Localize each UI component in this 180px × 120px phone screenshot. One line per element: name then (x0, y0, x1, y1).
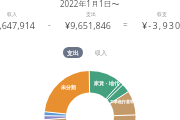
staticText: = (123, 19, 128, 30)
staticText: ¥9,651,846 (65, 19, 112, 31)
staticText: - (48, 19, 51, 30)
button[interactable]: 支出 (63, 47, 83, 58)
button[interactable]: 収入 (91, 47, 111, 58)
staticText: 2022年1月1日〜 (60, 0, 120, 7)
button[interactable]: 2022年1月1日〜 (0, 0, 180, 9)
staticText: 家賃・地代 (94, 80, 119, 86)
staticText: 収入 (95, 49, 107, 57)
staticText: 収支 (157, 11, 167, 17)
staticText: 未分類 (61, 84, 76, 90)
staticText: 支出 (67, 49, 79, 57)
staticText: 収入 (7, 11, 17, 17)
staticText: 工事進行基準 (110, 99, 134, 104)
staticText: 支出 (86, 11, 96, 17)
staticText: ¥1,647,914 (0, 19, 36, 31)
staticText: ¥-3,930, (142, 19, 180, 31)
